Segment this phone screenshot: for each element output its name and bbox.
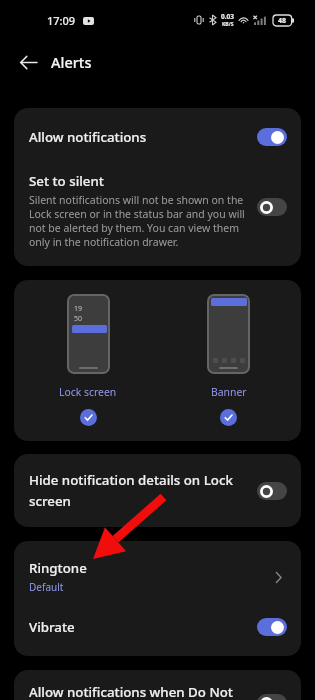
button[interactable]: Back [12, 46, 44, 78]
button[interactable]: Switch on [257, 618, 287, 636]
staticText: Allow notifications [29, 128, 257, 146]
button[interactable]: Hide notification details on Lock screen [14, 454, 301, 527]
staticText: Banner [211, 385, 247, 399]
staticText: Default [29, 580, 64, 594]
button[interactable]: Allow notifications when Do Not Disturb … [14, 670, 301, 700]
staticText: Hide notification details on Lock screen [29, 471, 243, 510]
button[interactable]: Ringtone [14, 541, 301, 604]
staticText: 50 [74, 314, 83, 324]
staticText: Ringtone [29, 559, 87, 577]
button[interactable]: Allow notifications [14, 108, 301, 172]
staticText: Alerts [51, 52, 92, 72]
button[interactable]: Banner [207, 294, 250, 426]
staticText: Silent notifications will not be shown o… [29, 193, 251, 249]
button[interactable]: Switch on [257, 128, 287, 146]
button[interactable]: Set to silent [14, 172, 301, 266]
staticText: 17:09 [47, 13, 76, 28]
button[interactable]: Vibrate [14, 604, 301, 656]
button[interactable]: 19 [59, 294, 117, 426]
staticText: Vibrate [29, 618, 257, 636]
staticText: 0.03 [221, 12, 234, 21]
staticText: KB/S [222, 21, 234, 28]
staticText: Set to silent [29, 172, 104, 190]
staticText: 19 [74, 304, 83, 314]
button[interactable]: Switch off [257, 694, 287, 700]
staticText: Lock screen [59, 385, 117, 399]
staticText: 48 [278, 16, 287, 26]
staticText: Allow notifications when Do Not Disturb … [29, 683, 243, 700]
button[interactable]: Switch off [257, 482, 287, 500]
button[interactable]: Switch off [257, 198, 287, 216]
